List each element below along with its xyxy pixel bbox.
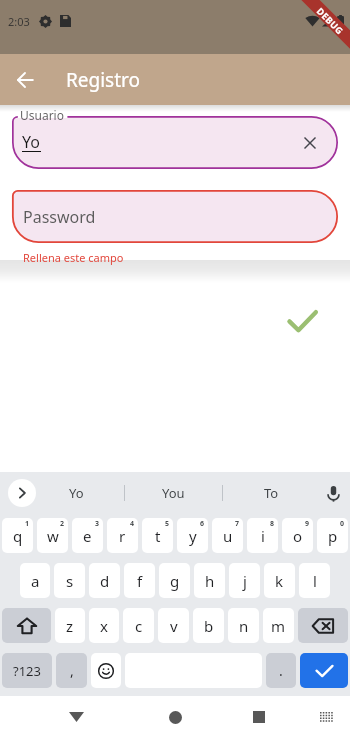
staticText: w — [47, 526, 59, 546]
staticText: 9 — [305, 519, 310, 529]
button[interactable]: Switch keyboard — [308, 698, 346, 736]
staticText: x — [100, 616, 108, 636]
staticText: o — [293, 526, 303, 546]
button[interactable]: Backspace — [298, 608, 348, 643]
button[interactable]: i — [247, 518, 278, 553]
staticText: v — [170, 616, 178, 636]
button[interactable]: Voice input — [320, 480, 346, 506]
button[interactable]: t — [142, 518, 173, 553]
button[interactable]: d — [89, 563, 120, 598]
button[interactable]: f — [124, 563, 155, 598]
staticText: m — [271, 616, 286, 636]
staticText: t — [155, 526, 161, 546]
staticText: 2 — [60, 519, 65, 529]
staticText: p — [328, 526, 338, 546]
staticText: 2:03 — [8, 14, 30, 29]
staticText: l — [313, 571, 317, 591]
staticText: DEBUG — [314, 5, 346, 36]
staticText: , — [70, 661, 74, 680]
staticText: f — [137, 571, 143, 591]
button[interactable]: , — [56, 653, 87, 688]
button[interactable]: Recents — [238, 696, 280, 738]
staticText: y — [189, 526, 197, 546]
button[interactable]: Confirm — [278, 297, 326, 345]
staticText: k — [275, 571, 284, 591]
staticText: 8 — [270, 519, 275, 529]
button[interactable]: v — [158, 608, 189, 643]
button[interactable]: l — [299, 563, 330, 598]
staticText: Password — [23, 206, 96, 228]
button[interactable]: p — [317, 518, 348, 553]
button[interactable]: c — [123, 608, 154, 643]
staticText: You — [162, 484, 185, 502]
staticText: d — [100, 571, 110, 591]
staticText: To — [264, 484, 279, 502]
button[interactable]: r — [107, 518, 138, 553]
staticText: n — [239, 616, 249, 636]
button[interactable]: Clear — [295, 128, 325, 158]
button[interactable]: m — [263, 608, 294, 643]
staticText: r — [119, 526, 126, 546]
button[interactable]: g — [159, 563, 190, 598]
button[interactable]: You — [125, 472, 222, 513]
staticText: b — [204, 616, 214, 636]
staticText: 1 — [25, 519, 30, 529]
staticText: c — [135, 616, 143, 636]
button[interactable]: z — [55, 608, 85, 643]
button[interactable]: n — [228, 608, 259, 643]
staticText: . — [279, 661, 283, 680]
button[interactable]: . — [266, 653, 296, 688]
staticText: 4 — [130, 519, 135, 529]
staticText: e — [83, 526, 92, 546]
button[interactable]: Emoji — [91, 653, 121, 688]
staticText: g — [170, 571, 180, 591]
button[interactable]: h — [194, 563, 225, 598]
staticText: 0 — [340, 519, 345, 529]
button[interactable]: k — [264, 563, 295, 598]
button[interactable]: s — [54, 563, 85, 598]
button[interactable]: j — [229, 563, 260, 598]
button[interactable]: To — [223, 472, 320, 513]
button[interactable]: b — [193, 608, 224, 643]
button[interactable]: x — [89, 608, 119, 643]
staticText: Rellena este campo — [23, 250, 124, 265]
staticText: Registro — [66, 67, 141, 93]
button[interactable]: ?123 — [2, 653, 52, 688]
staticText: Usuario — [20, 107, 64, 123]
staticText: h — [205, 571, 215, 591]
button[interactable]: Yo — [28, 472, 124, 513]
staticText: 7 — [235, 519, 240, 529]
staticText: q — [13, 526, 23, 546]
staticText: 5 — [165, 519, 170, 529]
staticText: Yo — [22, 131, 40, 153]
button[interactable]: e — [72, 518, 103, 553]
button[interactable]: o — [282, 518, 313, 553]
button[interactable]: Hide keyboard — [55, 696, 97, 738]
staticText: z — [66, 616, 74, 636]
button[interactable]: Shift — [2, 608, 51, 643]
staticText: Yo — [69, 484, 84, 502]
button[interactable]: Back — [3, 58, 47, 102]
staticText: s — [66, 571, 74, 591]
staticText: ?123 — [13, 662, 41, 680]
button[interactable]: u — [212, 518, 243, 553]
staticText: j — [243, 571, 247, 591]
staticText: 3 — [95, 519, 100, 529]
staticText: u — [223, 526, 233, 546]
button[interactable]: w — [37, 518, 68, 553]
staticText: a — [31, 571, 40, 591]
staticText: 6 — [200, 519, 205, 529]
button[interactable]: Enter — [300, 653, 348, 688]
button[interactable]: y — [177, 518, 208, 553]
button[interactable]: a — [20, 563, 50, 598]
button[interactable]: More suggestions — [8, 479, 36, 507]
button[interactable]: q — [2, 518, 33, 553]
button[interactable]: Home — [154, 696, 196, 738]
button[interactable]: Password — [12, 190, 338, 243]
staticText: i — [261, 526, 265, 546]
